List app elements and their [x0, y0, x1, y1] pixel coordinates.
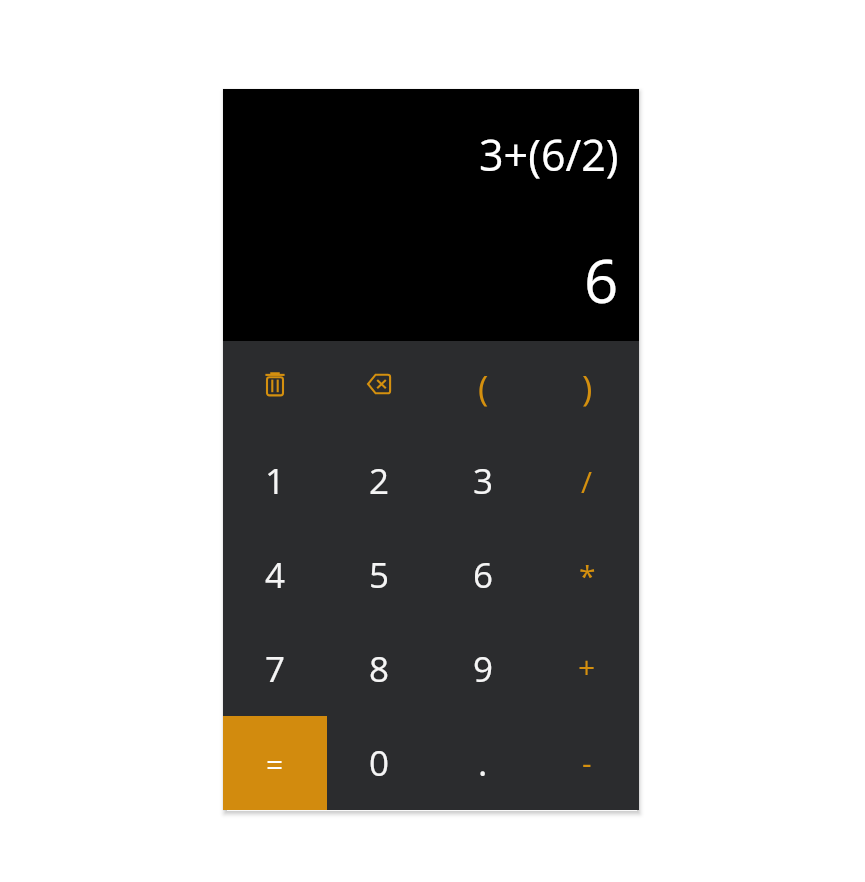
staticText: ) — [582, 364, 593, 412]
staticText: 0 — [369, 739, 390, 787]
button[interactable]: 8 — [327, 622, 431, 716]
staticText: 9 — [473, 645, 494, 693]
staticText: 3+(6/2) — [479, 125, 619, 184]
staticText: = — [266, 743, 284, 784]
button[interactable]: 3 — [431, 434, 535, 528]
button[interactable]: ( — [431, 341, 535, 434]
button[interactable]: + — [535, 622, 639, 716]
button[interactable]: 2 — [327, 434, 431, 528]
button[interactable]: 1 — [223, 434, 327, 528]
staticText: 8 — [369, 645, 390, 693]
staticText: * — [579, 555, 596, 596]
button[interactable]: 6 — [431, 528, 535, 622]
staticText: 6 — [473, 551, 494, 599]
staticText: - — [582, 742, 592, 783]
button[interactable] — [223, 341, 327, 434]
staticText: 4 — [265, 551, 286, 599]
button[interactable]: * — [535, 528, 639, 622]
button[interactable]: ) — [535, 341, 639, 434]
button[interactable]: 5 — [327, 528, 431, 622]
staticText: 7 — [265, 645, 286, 693]
button[interactable]: . — [431, 716, 535, 810]
staticText: 3 — [473, 457, 494, 505]
button[interactable]: 4 — [223, 528, 327, 622]
staticText: . — [478, 739, 488, 787]
staticText: 1 — [265, 457, 286, 505]
button[interactable]: 9 — [431, 622, 535, 716]
staticText: 5 — [369, 551, 390, 599]
staticText: ( — [478, 364, 489, 412]
button[interactable]: 0 — [327, 716, 431, 810]
button[interactable]: / — [535, 434, 639, 528]
staticText: + — [578, 646, 596, 687]
button[interactable]: 7 — [223, 622, 327, 716]
button[interactable]: = — [223, 716, 327, 810]
staticText: 2 — [369, 457, 390, 505]
staticText: / — [581, 461, 593, 502]
button[interactable]: - — [535, 716, 639, 810]
staticText: 6 — [584, 239, 619, 321]
button[interactable] — [327, 341, 431, 434]
